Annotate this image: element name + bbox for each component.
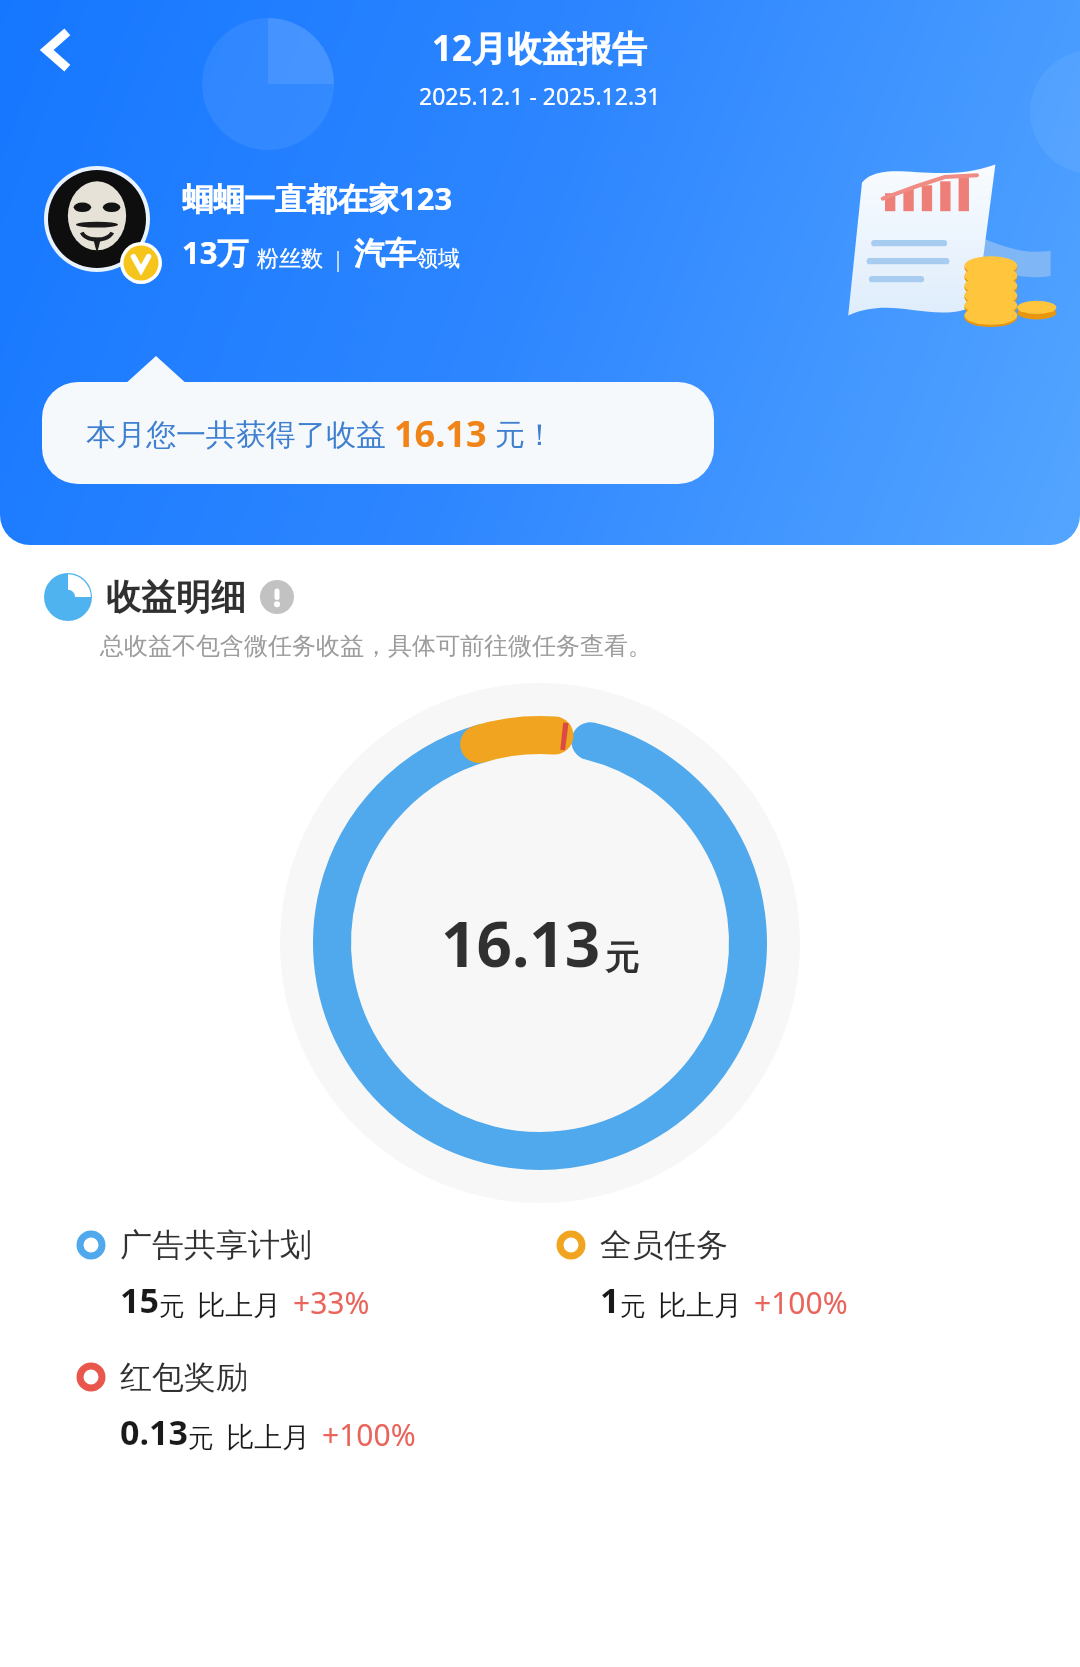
staticText: 元	[620, 1290, 646, 1323]
staticText: 13万	[182, 231, 249, 273]
button[interactable]: 广告共享计划	[76, 1225, 370, 1323]
staticText: 1	[600, 1277, 620, 1323]
staticText: 汽车	[354, 234, 416, 273]
button[interactable]: 收益明细	[44, 573, 294, 621]
staticText: 领域	[416, 245, 460, 273]
staticText: 15	[120, 1277, 159, 1323]
staticText: 元	[188, 1422, 214, 1455]
staticText: 16.13	[441, 901, 601, 985]
button[interactable]: Back	[16, 10, 96, 90]
staticText: 总收益不包含微任务收益，具体可前往微任务查看。	[100, 631, 652, 661]
staticText: 比上月	[226, 1420, 310, 1455]
staticText: 元	[159, 1290, 185, 1323]
staticText: 元	[605, 936, 639, 979]
staticText: 16.13	[394, 409, 487, 458]
staticText: 收益明细	[106, 575, 246, 619]
staticText: 红包奖励	[120, 1357, 248, 1397]
staticText: +33%	[293, 1282, 370, 1323]
button[interactable]: 全员任务	[556, 1225, 848, 1323]
staticText: 广告共享计划	[120, 1225, 312, 1265]
staticText: 12月收益报告	[432, 24, 648, 72]
button[interactable]: 蝈蝈一直都在家123	[44, 166, 460, 284]
staticText: |	[332, 243, 345, 273]
staticText: 本月您一共获得了收益	[86, 413, 394, 454]
staticText: 2025.12.1 - 2025.12.31	[419, 80, 661, 111]
staticText: 比上月	[658, 1288, 742, 1323]
button[interactable]: 红包奖励	[76, 1357, 416, 1455]
staticText: +100%	[322, 1414, 416, 1455]
staticText: 元！	[487, 413, 555, 454]
staticText: 比上月	[197, 1288, 281, 1323]
button[interactable]: Info	[260, 580, 294, 614]
staticText: 0.13	[120, 1409, 188, 1455]
staticText: 粉丝数	[257, 245, 323, 273]
staticText: +100%	[754, 1282, 848, 1323]
staticText: 全员任务	[600, 1225, 728, 1265]
staticText: 蝈蝈一直都在家123	[182, 177, 453, 219]
